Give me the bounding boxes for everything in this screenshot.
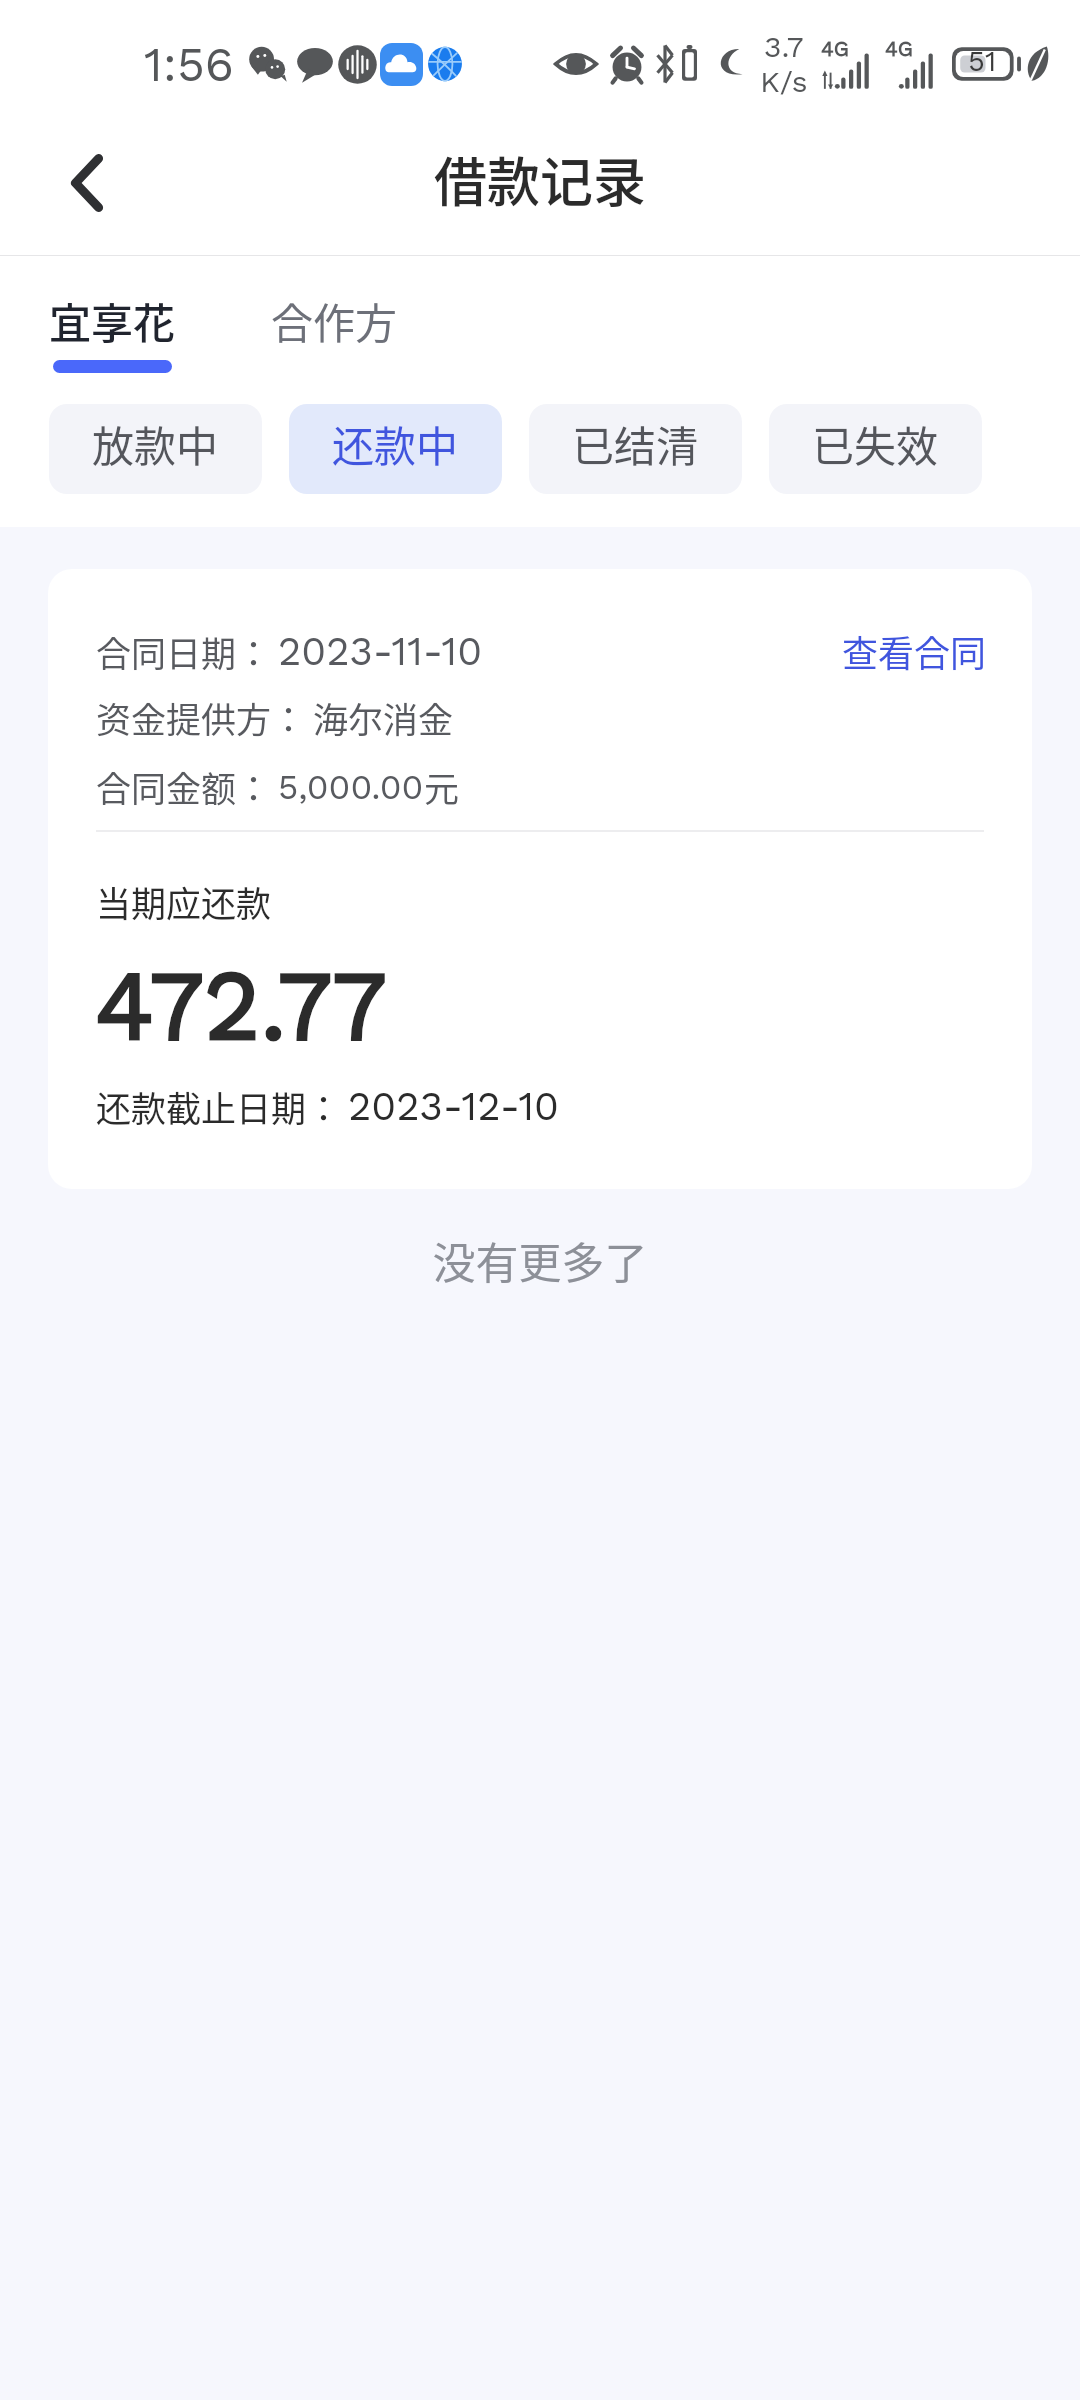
staticText: 没有更多了 (0, 1229, 1080, 1291)
button[interactable]: 宜享花 (49, 290, 176, 373)
staticText: K/s (760, 64, 808, 99)
staticText: 已失效 (812, 413, 939, 474)
staticText: 元 (424, 761, 460, 812)
staticText: 宜享花 (49, 290, 176, 351)
staticText: 借款记录 (434, 141, 646, 218)
staticText: 放款中 (92, 413, 219, 474)
button[interactable]: 放款中 (49, 404, 262, 494)
staticText: 51 (968, 44, 997, 78)
button[interactable]: 返回 (40, 137, 132, 229)
staticText: 已结清 (572, 413, 699, 474)
staticText: 5,000.00 (278, 766, 424, 807)
staticText: 472.77 (95, 949, 387, 1063)
staticText: 3.7 (764, 29, 804, 64)
staticText: 合同金额： (96, 761, 272, 812)
staticText: 还款中 (332, 413, 459, 474)
button[interactable]: 查看合同 (828, 611, 1001, 691)
staticText: 合同日期： (96, 626, 272, 677)
staticText: 资金提供方： (96, 692, 307, 743)
staticText: 海尔消金 (313, 692, 454, 743)
staticText: 1:56 (144, 36, 235, 92)
staticText: 查看合同 (842, 625, 987, 677)
staticText: 合作方 (271, 290, 398, 351)
button[interactable]: 合同日期： (48, 569, 1032, 1189)
staticText: 还款截止日期： (96, 1081, 342, 1132)
staticText: 当期应还款 (96, 876, 272, 927)
button[interactable]: 已结清 (529, 404, 742, 494)
staticText: 4G (821, 36, 850, 61)
staticText: 2023-11-10 (278, 628, 483, 675)
button[interactable]: 已失效 (769, 404, 982, 494)
button[interactable]: 合作方 (271, 290, 398, 373)
staticText: 2023-12-10 (348, 1083, 559, 1130)
staticText: 4G (885, 36, 914, 61)
button[interactable]: 还款中 (289, 404, 502, 494)
